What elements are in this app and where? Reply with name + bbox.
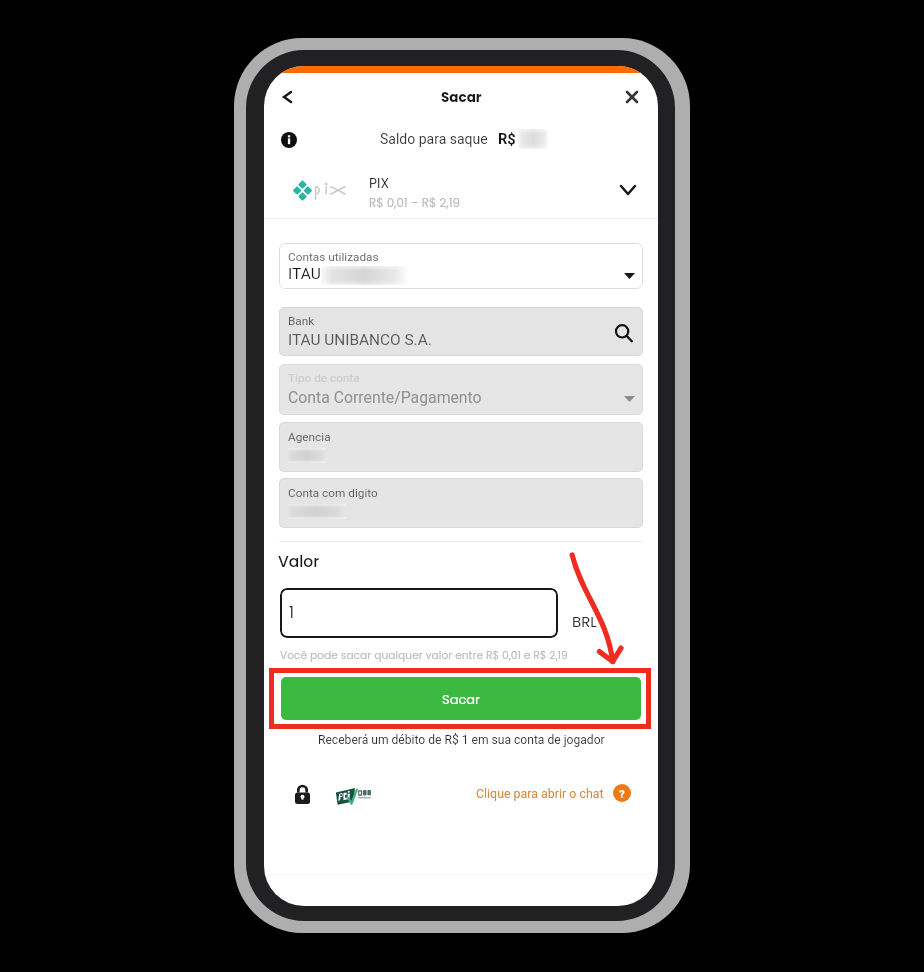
staticText: Valor	[278, 551, 320, 573]
staticText: ITAU UNIBANCO S.A.	[288, 331, 432, 349]
button[interactable]: Agencia	[279, 422, 643, 472]
button[interactable]: Tipo de conta	[279, 364, 643, 415]
button[interactable]: Conta com digito	[279, 478, 643, 528]
staticText: Receberá um débito de R$ 1 em sua conta …	[318, 733, 605, 747]
staticText: Conta com digito	[288, 486, 378, 500]
button[interactable]: Sacar	[281, 677, 641, 720]
button[interactable]: Clique para abrir o chat	[476, 784, 631, 802]
staticText: R$ 0,01 – R$ 2,19	[369, 195, 460, 212]
button[interactable]: Back	[268, 78, 306, 116]
staticText: 1	[289, 602, 294, 624]
staticText: Clique para abrir o chat	[476, 786, 604, 801]
button[interactable]: 1	[280, 588, 558, 638]
staticText: R$	[498, 130, 516, 147]
staticText: Sacar	[441, 88, 482, 107]
staticText: Contas utilizadas	[288, 250, 379, 264]
staticText: BRL	[572, 611, 597, 632]
button[interactable]	[264, 162, 658, 218]
staticText: Conta Corrente/Pagamento	[288, 388, 482, 407]
button[interactable]: Search bank	[612, 321, 634, 343]
staticText: Tipo de conta	[288, 371, 360, 385]
button[interactable]: Contas utilizadas	[279, 243, 643, 289]
staticText: Você pode sacar qualquer valor entre R$ …	[280, 648, 568, 663]
staticText: Saldo para saque	[380, 131, 488, 147]
staticText: Agencia	[288, 430, 331, 444]
staticText: ?	[619, 787, 625, 800]
button[interactable]: Information	[281, 132, 297, 148]
button[interactable]: Bank	[279, 307, 643, 356]
staticText: PIX	[369, 174, 389, 193]
button[interactable]: Close	[613, 78, 651, 116]
staticText: Sacar	[442, 690, 480, 708]
staticText: Bank	[288, 314, 315, 328]
staticText: ITAU	[288, 265, 321, 283]
